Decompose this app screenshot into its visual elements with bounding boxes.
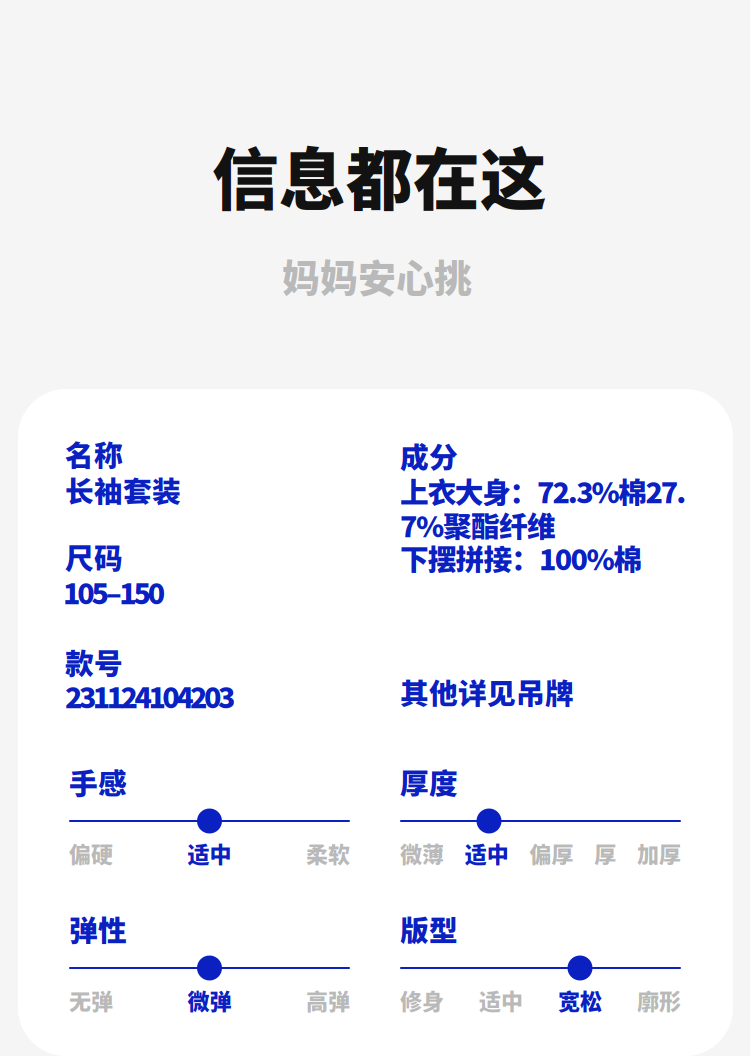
staticText: 修身 <box>400 984 444 1016</box>
staticText: 其他详见吊牌 <box>400 671 574 712</box>
staticText: 妈妈安心挑 <box>282 248 472 303</box>
staticText: 适中 <box>187 837 231 869</box>
staticText: 宽松 <box>558 984 602 1016</box>
staticText: 成分 <box>400 435 458 476</box>
staticText: 厚 <box>594 837 616 869</box>
staticText: 偏厚 <box>529 837 573 869</box>
staticText: 信息都在这 <box>212 127 547 223</box>
staticText: 长袖套装 <box>65 469 181 510</box>
staticText: 上衣大身：72.3%棉27. <box>400 470 686 511</box>
staticText: 无弹 <box>69 984 113 1016</box>
staticText: 尺码 <box>65 536 123 577</box>
staticText: 偏硬 <box>69 837 113 869</box>
staticText: 廓形 <box>637 984 681 1016</box>
staticText: 加厚 <box>637 837 681 869</box>
staticText: 下摆拼接：100%棉 <box>400 537 642 578</box>
staticText: 名称 <box>65 433 123 474</box>
staticText: 弹性 <box>69 908 127 949</box>
staticText: 款号 <box>65 641 123 682</box>
staticText: 7%聚酯纤维 <box>400 504 556 545</box>
staticText: 手感 <box>69 761 127 802</box>
staticText: 柔软 <box>306 837 350 869</box>
staticText: 231124104203 <box>65 675 235 716</box>
staticText: 高弹 <box>306 984 350 1016</box>
staticText: 105–150 <box>63 571 165 612</box>
staticText: 微薄 <box>400 837 444 869</box>
staticText: 适中 <box>479 984 523 1016</box>
staticText: 适中 <box>465 837 509 869</box>
staticText: 厚度 <box>400 761 458 802</box>
staticText: 微弹 <box>187 984 231 1016</box>
staticText: 版型 <box>400 908 458 949</box>
